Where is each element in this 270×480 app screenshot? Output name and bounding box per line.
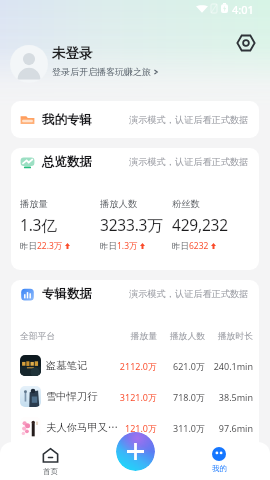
staticText: 雪中悍刀行 [46, 390, 119, 403]
staticText: 121.0万 [119, 422, 157, 434]
staticText: 311.0万 [165, 422, 205, 434]
staticText: 97.6min [213, 422, 253, 434]
staticText: 演示模式，认证后看正式数据 [129, 288, 249, 300]
button[interactable]: Add [116, 432, 155, 471]
staticText: 我的专辑 [42, 112, 92, 128]
staticText: 22.3万 [37, 240, 63, 252]
button[interactable]: 首页 [28, 447, 72, 476]
staticText: 首页 [43, 467, 58, 476]
staticText: 240.1min [213, 360, 253, 372]
staticText: 夫人你马甲又掉了 [46, 421, 119, 434]
staticText: 429,232 [172, 214, 228, 235]
staticText: 登录后开启播客玩赚之旅 [52, 66, 151, 77]
staticText: 3121.0万 [119, 391, 157, 403]
staticText: 3233.3万 [100, 214, 163, 235]
staticText: 718.0万 [165, 391, 205, 403]
staticText: 盗墓笔记 [46, 359, 119, 372]
staticText: 昨日 [100, 241, 117, 252]
staticText: 1.3亿 [20, 214, 57, 235]
staticText: 专辑数据 [42, 286, 92, 302]
staticText: 总览数据 [42, 154, 92, 170]
staticText: 未登录 [52, 45, 93, 62]
staticText: 播放时长 [213, 331, 253, 342]
button[interactable]: 我的 [197, 447, 241, 473]
staticText: 4:01 [232, 2, 254, 14]
staticText: 播放量 [20, 198, 48, 210]
staticText: 粉丝数 [172, 198, 200, 210]
staticText: 621.0万 [165, 360, 205, 372]
button[interactable]: 盗墓笔记 [20, 350, 253, 381]
button[interactable]: 我的专辑 [11, 101, 259, 138]
staticText: 2112.0万 [119, 360, 157, 372]
staticText: 演示模式，认证后看正式数据 [129, 114, 249, 126]
button[interactable]: 夫人你马甲又掉了 [20, 412, 253, 443]
staticText: 38.5min [213, 391, 253, 403]
staticText: 昨日 [172, 241, 189, 252]
staticText: 播放人数 [165, 331, 205, 342]
staticText: 播放人数 [100, 198, 138, 210]
staticText: 6232 [189, 240, 209, 252]
button[interactable]: 雪中悍刀行 [20, 381, 253, 412]
staticText: 昨日 [20, 241, 37, 252]
staticText: 1.3万 [117, 240, 138, 252]
staticText: 播放量 [119, 331, 157, 342]
staticText: 我的 [212, 464, 227, 473]
staticText: 演示模式，认证后看正式数据 [129, 156, 249, 168]
button[interactable]: 未登录 [52, 45, 159, 77]
staticText: 全部平台 [20, 331, 119, 342]
button[interactable]: Settings [234, 31, 258, 55]
